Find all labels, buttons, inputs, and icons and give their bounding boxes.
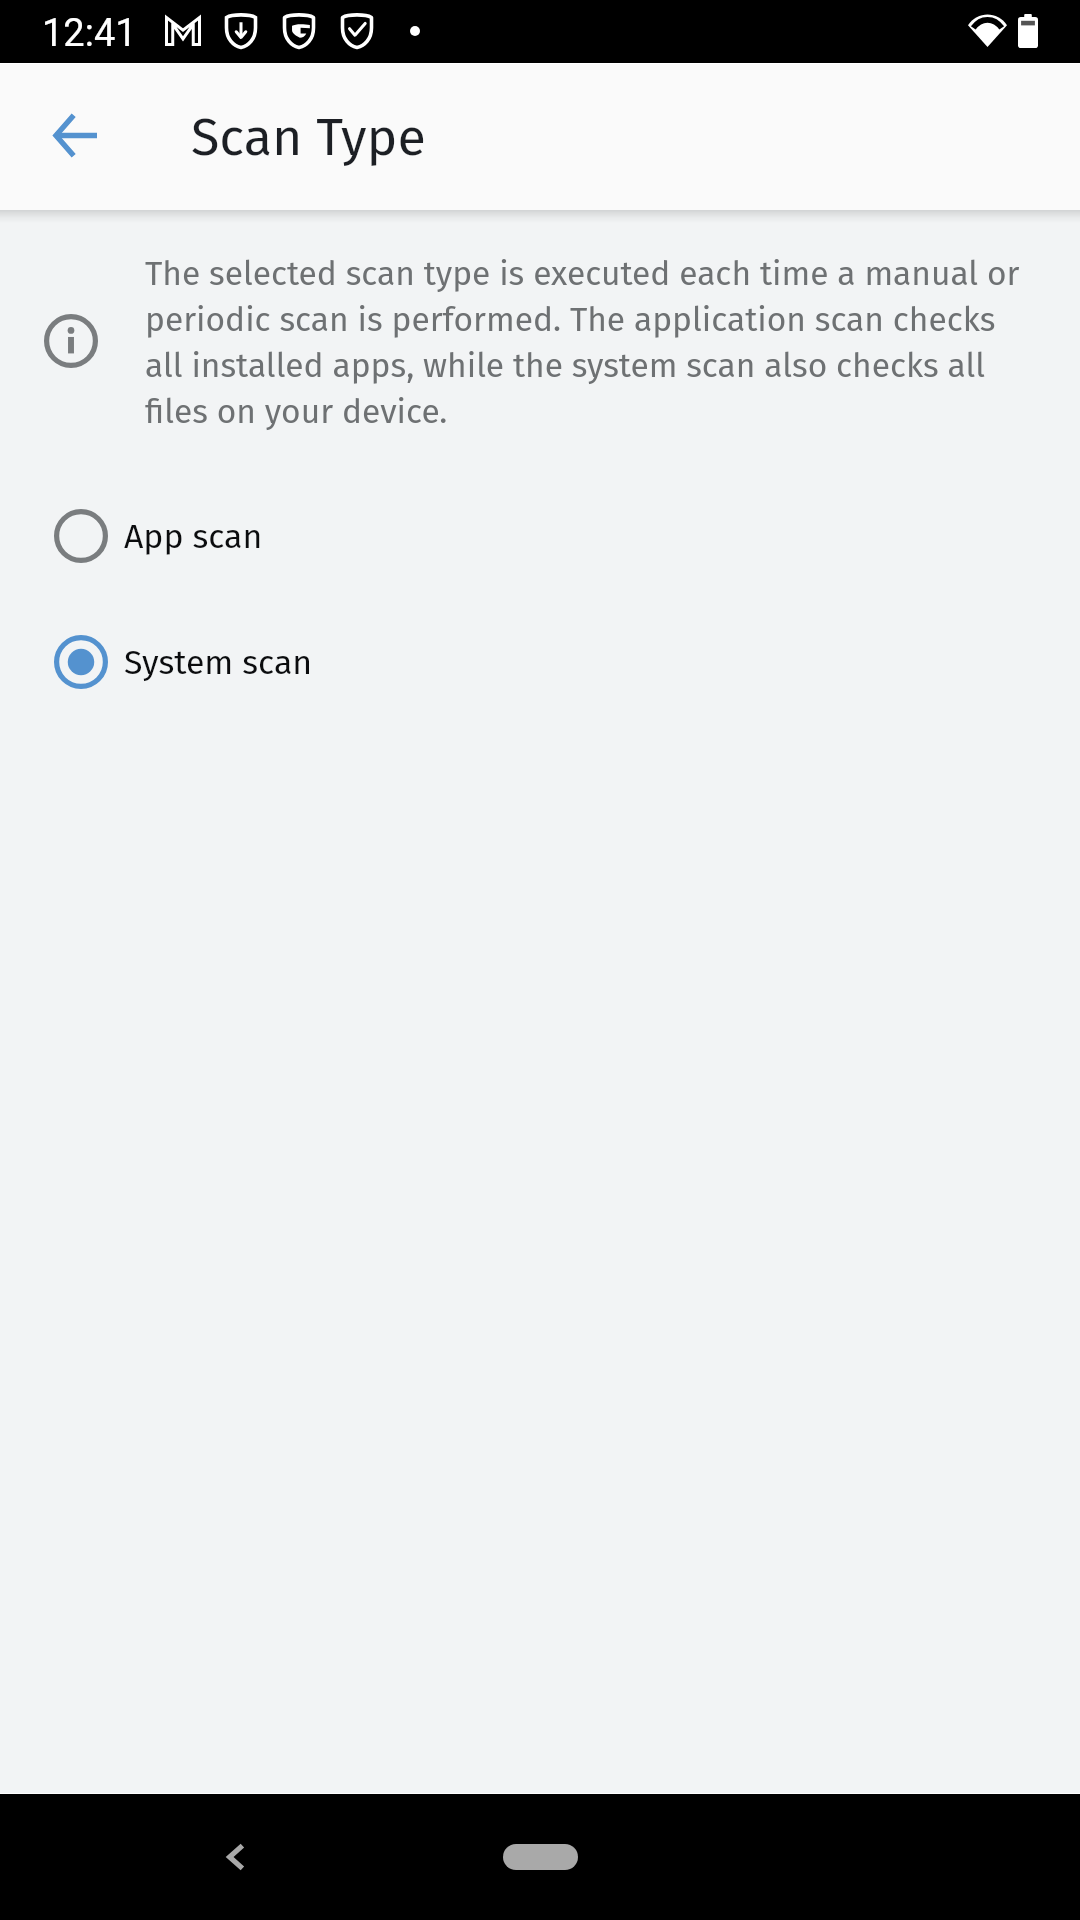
button[interactable]: App scan (0, 486, 1080, 586)
staticText: 12:41 (42, 11, 137, 56)
button[interactable]: Home (503, 1844, 578, 1870)
staticText: App scan (124, 516, 263, 557)
button[interactable]: Back (30, 91, 119, 180)
staticText: System scan (124, 642, 313, 683)
button[interactable]: Back (201, 1822, 271, 1892)
button[interactable]: System scan (0, 612, 1080, 712)
staticText: Scan Type (191, 106, 426, 168)
staticText: The selected scan type is executed each … (145, 254, 1025, 432)
